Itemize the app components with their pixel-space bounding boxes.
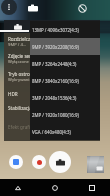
- staticText: 9MP / 3920x2208(16:9): [32, 44, 79, 50]
- staticText: Rozdzielczość: [8, 36, 38, 42]
- button[interactable]: 3MP / 2048x1536(4:3): [30, 89, 100, 106]
- staticText: Wykrywanie: [8, 77, 32, 83]
- staticText: Efekt graficzny: [8, 124, 40, 130]
- button[interactable]: Record video: [32, 155, 46, 169]
- button[interactable]: VGA / 640x480(4:3): [30, 123, 100, 140]
- staticText: VGA / 640x480(4:3): [32, 129, 71, 135]
- staticText: 3MP / 2048x1536(4:3): [32, 95, 77, 101]
- button[interactable]: Camera settings tab: [4, 20, 32, 33]
- button[interactable]: Gallery: [9, 155, 23, 169]
- button[interactable]: 8MP / 3840x2160(16:9): [30, 72, 100, 89]
- button[interactable]: More options: [1, 0, 17, 15]
- staticText: HDR: [8, 91, 18, 97]
- staticText: 13MP / 4096x3072(4:3): [32, 27, 79, 33]
- staticText: 2MP / 1920x1080(16:9): [32, 112, 79, 118]
- button[interactable]: Take photo: [49, 151, 71, 173]
- button[interactable]: 9MP / 3920x2208(16:9): [30, 38, 100, 55]
- staticText: Wyłączone: [8, 59, 29, 65]
- button[interactable]: 2MP / 1920x1080(16:9): [30, 106, 100, 123]
- button[interactable]: General settings tab: [76, 20, 104, 33]
- staticText: Stabilizacja: [8, 105, 32, 111]
- staticText: Tryb ostrości: [8, 71, 36, 77]
- button[interactable]: Flash off: [75, 1, 89, 15]
- staticText: Zdjęcie seryjne: [8, 53, 41, 59]
- button[interactable]: Camera mode: [26, 1, 40, 15]
- button[interactable]: 13MP / 4096x3072(4:3): [30, 21, 100, 38]
- staticText: 8MP / 3264x2448(4:3): [32, 61, 77, 67]
- button[interactable]: Last photo: [87, 156, 104, 173]
- staticText: 8MP / 3840x2160(16:9): [32, 78, 79, 84]
- button[interactable]: Home: [36, 179, 73, 196]
- staticText: 9MP / 4...: [8, 42, 27, 48]
- button[interactable]: Recent apps: [73, 179, 110, 196]
- button[interactable]: 8MP / 3264x2448(4:3): [30, 55, 100, 72]
- button[interactable]: Back: [0, 179, 36, 196]
